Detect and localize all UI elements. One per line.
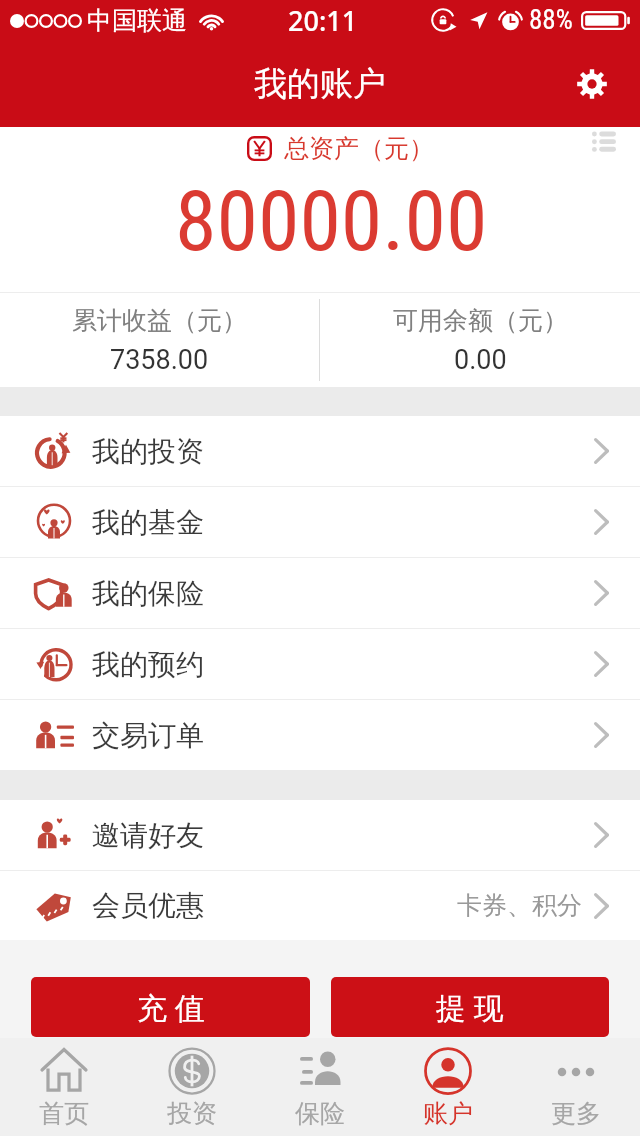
staticText: 中国联通 (87, 5, 187, 36)
button[interactable]: 保险 (256, 1038, 384, 1136)
button[interactable]: 我的投资 (0, 416, 640, 486)
staticText: 我的账户 (254, 63, 386, 105)
staticText: 提 现 (436, 987, 504, 1028)
button[interactable]: 会员优惠 (0, 871, 640, 940)
staticText: 账户 (423, 1098, 473, 1129)
staticText: 我的保险 (92, 576, 204, 611)
staticText: 会员优惠 (92, 888, 204, 923)
button[interactable]: 交易订单 (0, 700, 640, 770)
button[interactable]: 我的保险 (0, 558, 640, 628)
button[interactable]: 可用余额（元） (320, 293, 640, 387)
staticText: 交易订单 (92, 718, 204, 753)
staticText: 卡券、积分 (457, 890, 582, 921)
staticText: 更多 (551, 1098, 601, 1129)
staticText: 可用余额（元） (393, 305, 568, 336)
button[interactable]: 首页 (0, 1038, 128, 1136)
button[interactable]: 邀请好友 (0, 800, 640, 870)
button[interactable]: Records (592, 127, 640, 175)
staticText: 总资产（元） (284, 133, 434, 164)
button[interactable]: 投资 (128, 1038, 256, 1136)
button[interactable]: 充 值 (31, 977, 310, 1037)
staticText: 充 值 (137, 987, 205, 1028)
button[interactable]: 提 现 (331, 977, 609, 1037)
staticText: 邀请好友 (92, 818, 204, 853)
staticText: 7358.00 (110, 344, 209, 376)
staticText: 20:11 (288, 2, 358, 39)
staticText: 保险 (295, 1098, 345, 1129)
button[interactable]: 我的预约 (0, 629, 640, 699)
staticText: 88% (529, 4, 573, 36)
button[interactable]: 累计收益（元） (0, 293, 319, 387)
staticText: 我的投资 (92, 434, 204, 469)
staticText: 我的基金 (92, 505, 204, 540)
button[interactable]: 账户 (384, 1038, 512, 1136)
button[interactable]: 更多 (512, 1038, 640, 1136)
staticText: 投资 (167, 1098, 217, 1129)
button[interactable]: Settings (544, 40, 640, 127)
staticText: 首页 (39, 1098, 89, 1129)
staticText: 累计收益（元） (72, 305, 247, 336)
button[interactable]: 我的基金 (0, 487, 640, 557)
staticText: 0.00 (454, 344, 507, 376)
staticText: 80000.00 (175, 172, 488, 270)
staticText: 我的预约 (92, 647, 204, 682)
